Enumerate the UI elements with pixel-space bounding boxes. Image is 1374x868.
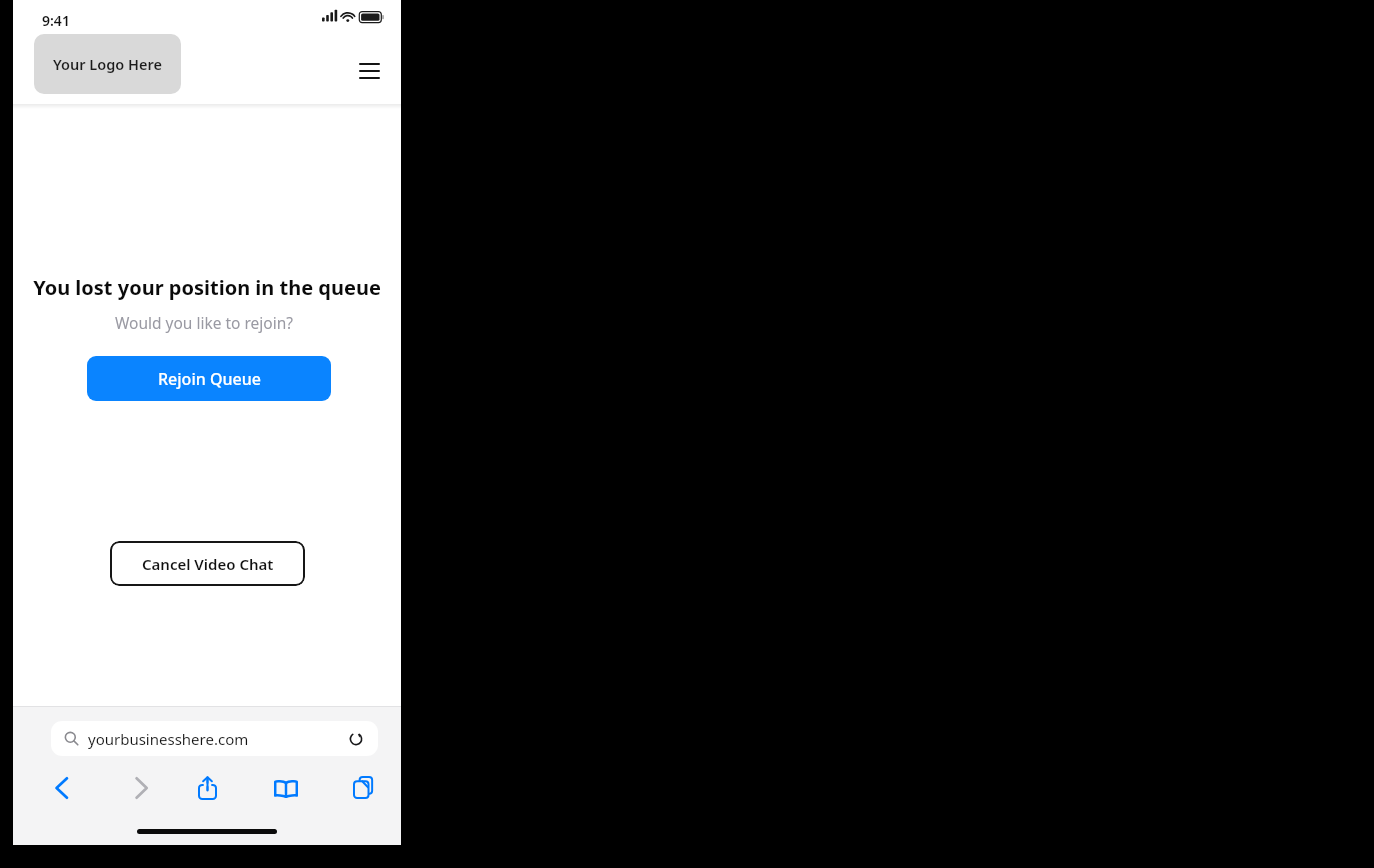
staticText: Your Logo Here — [53, 54, 162, 74]
staticText: Would you like to rejoin? — [10, 312, 398, 333]
staticText: You lost your position in the queue — [25, 274, 389, 301]
button[interactable]: Tabs — [338, 771, 390, 805]
button[interactable]: Cancel Video Chat — [110, 541, 305, 586]
staticText: yourbusinesshere.com — [88, 729, 249, 749]
button[interactable]: Share — [181, 771, 233, 805]
button[interactable]: Back — [35, 771, 87, 805]
staticText: Rejoin Queue — [158, 368, 261, 390]
button[interactable]: Rejoin Queue — [87, 356, 331, 401]
button[interactable]: Forward — [115, 771, 167, 805]
staticText: Cancel Video Chat — [142, 554, 274, 574]
button[interactable]: Menu — [347, 49, 391, 93]
button[interactable]: Reload — [342, 725, 370, 753]
button[interactable]: Your Logo Here — [34, 34, 181, 94]
button[interactable]: yourbusinesshere.com — [51, 721, 378, 756]
button[interactable]: Bookmarks — [260, 771, 312, 805]
staticText: 9:41 — [42, 11, 70, 30]
